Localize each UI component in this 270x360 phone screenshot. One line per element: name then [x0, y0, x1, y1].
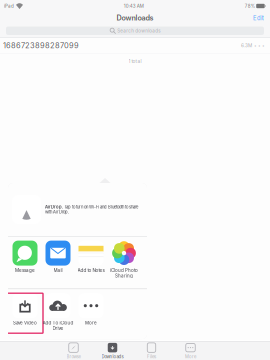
- staticText: 10:43 AM: [124, 3, 144, 9]
- button[interactable]: iCloud Photo: [107, 241, 140, 281]
- button[interactable]: More: [171, 342, 209, 359]
- button[interactable]: Mail: [41, 241, 74, 281]
- staticText: • • •: [254, 43, 265, 48]
- staticText: Tap to turn on Wi-Fi and Bluetooth to sh…: [63, 204, 138, 209]
- staticText: Drive: [52, 326, 63, 331]
- button[interactable]: Add To iCloud: [41, 293, 74, 333]
- staticText: AirDrop.: [45, 204, 63, 209]
- staticText: Add to Notes: [77, 268, 104, 273]
- button[interactable]: Files: [132, 342, 170, 359]
- staticText: with AirDrop.: [45, 209, 69, 214]
- staticText: iPad: [4, 3, 14, 9]
- staticText: Downloads: [116, 14, 153, 22]
- button[interactable]: Edit: [253, 11, 270, 25]
- staticText: Downloads: [101, 354, 123, 359]
- button[interactable]: Message: [8, 241, 41, 281]
- staticText: 1686723898287099: [3, 41, 79, 50]
- staticText: Mail: [53, 268, 62, 273]
- staticText: 78%: [245, 3, 255, 9]
- staticText: More: [185, 354, 196, 359]
- staticText: Message: [15, 268, 35, 273]
- button[interactable]: AirDrop.: [8, 183, 147, 236]
- staticText: More: [85, 320, 97, 326]
- button[interactable]: Search downloads: [6, 26, 264, 35]
- staticText: Search downloads: [117, 28, 160, 33]
- staticText: Edit: [253, 14, 264, 22]
- staticText: iCloud Photo: [110, 268, 138, 273]
- staticText: Sharing: [115, 273, 133, 279]
- staticText: 1 total: [128, 58, 141, 64]
- button[interactable]: Downloads: [93, 342, 131, 359]
- button[interactable]: Add to Notes: [74, 241, 107, 281]
- staticText: 6.3M: [241, 43, 252, 48]
- staticText: Save Video: [13, 320, 37, 326]
- staticText: Files: [147, 354, 156, 359]
- button[interactable]: Browse: [54, 342, 92, 359]
- staticText: Browse: [66, 354, 80, 359]
- button[interactable]: 1686723898287099: [0, 38, 270, 53]
- button[interactable]: Save Video: [8, 293, 41, 333]
- staticText: Add To iCloud: [42, 320, 73, 326]
- button[interactable]: More: [74, 293, 107, 333]
